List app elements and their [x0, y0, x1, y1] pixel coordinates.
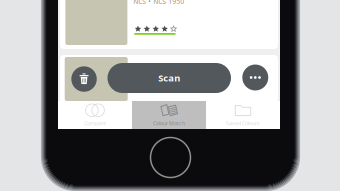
button[interactable]: Delete	[71, 66, 97, 92]
button[interactable]: More options	[242, 64, 268, 90]
staticText: Saved Colours	[226, 120, 260, 127]
button[interactable]: Compare	[58, 101, 132, 129]
staticText: Scan	[158, 72, 180, 84]
button[interactable]: Scan	[107, 63, 231, 93]
button[interactable]: Colour Match	[132, 101, 206, 129]
staticText: Compare	[84, 120, 106, 127]
staticText: Colour Match	[153, 120, 185, 127]
button[interactable]: Saved Colours	[206, 101, 280, 129]
staticText: NCS • NCS 1950	[133, 0, 184, 6]
